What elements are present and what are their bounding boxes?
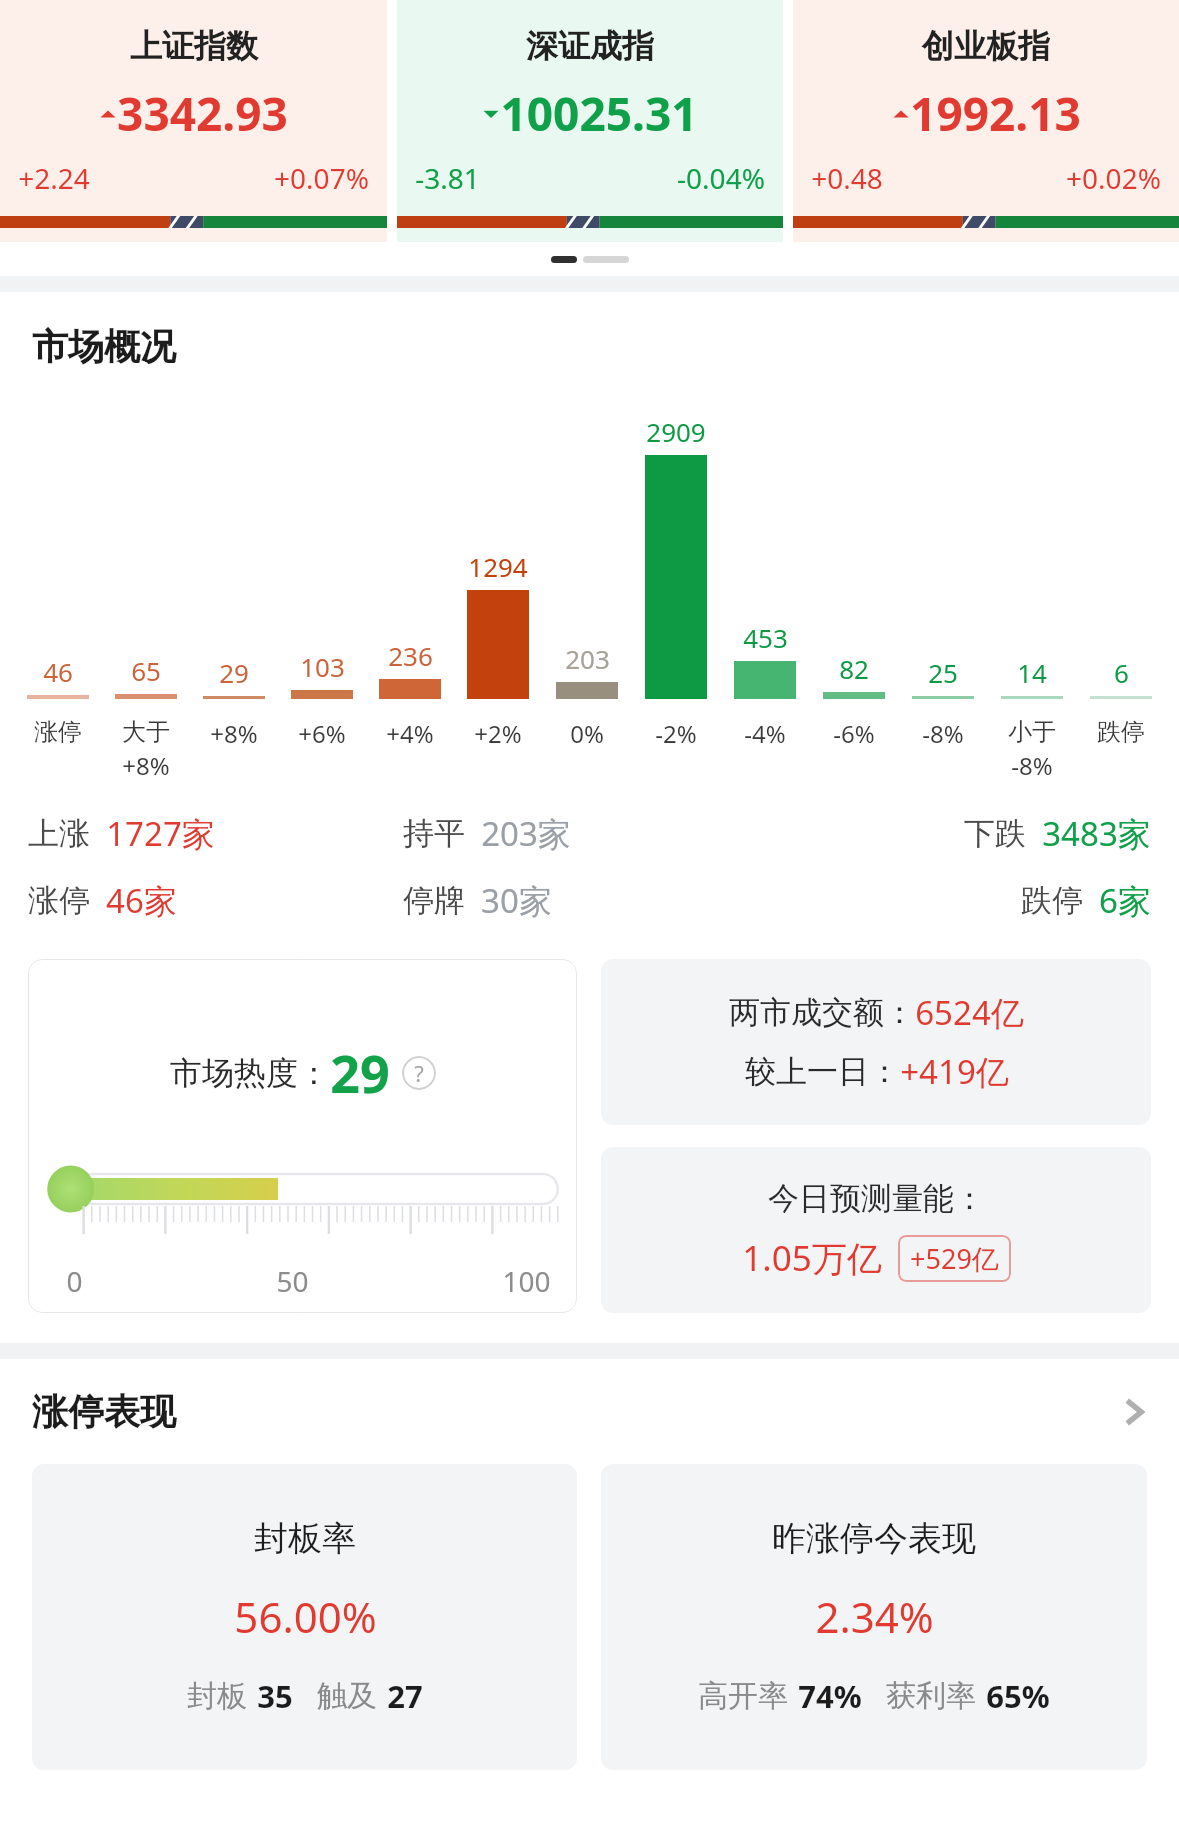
staticText: -4%: [744, 717, 786, 750]
staticText: 27: [387, 1675, 423, 1717]
staticText: 46家: [106, 878, 177, 923]
staticText: 50: [276, 1262, 309, 1300]
staticText: 深证成指: [526, 26, 654, 66]
staticText: +4%: [386, 717, 434, 750]
button[interactable]: 市场热度：: [28, 959, 577, 1313]
staticText: -6%: [833, 717, 875, 750]
staticText: 上证指数: [130, 26, 258, 66]
staticText: 两市成交额：: [729, 993, 915, 1032]
staticText: 封板: [187, 1677, 247, 1715]
staticText: -0.04%: [677, 159, 765, 197]
button[interactable]: 创业板指: [793, 0, 1179, 242]
button[interactable]: 29: [190, 409, 278, 783]
staticText: +8%: [210, 717, 258, 750]
button[interactable]: 236: [366, 409, 454, 783]
staticText: -8%: [1011, 749, 1053, 782]
staticText: 103: [300, 649, 345, 684]
button[interactable]: 昨涨停今表现: [601, 1464, 1147, 1770]
staticText: +2%: [474, 717, 522, 750]
staticText: 昨涨停今表现: [772, 1517, 976, 1560]
staticText: 持平: [403, 814, 465, 853]
staticText: 较上一日：: [745, 1052, 900, 1091]
button[interactable]: 2909: [631, 409, 720, 783]
staticText: 2.34%: [815, 1588, 934, 1645]
staticText: -3.81: [415, 159, 480, 197]
staticText: 6524亿: [915, 990, 1024, 1035]
staticText: 3342.93: [117, 82, 288, 145]
staticText: 上涨: [28, 814, 90, 853]
staticText: 30家: [481, 878, 552, 923]
staticText: 市场概况: [32, 324, 176, 369]
button[interactable]: 453: [720, 409, 809, 783]
button[interactable]: 今日预测量能：: [601, 1147, 1151, 1313]
staticText: 203: [565, 641, 610, 676]
button[interactable]: 6: [1076, 409, 1165, 783]
staticText: 停牌: [403, 881, 465, 920]
staticText: 1294: [468, 549, 528, 584]
staticText: -2%: [655, 717, 697, 750]
staticText: 下跌: [964, 814, 1026, 853]
button[interactable]: 25: [898, 409, 987, 783]
staticText: +2.24: [18, 159, 90, 197]
staticText: 65: [131, 653, 161, 688]
staticText: 跌停: [1097, 717, 1145, 747]
staticText: 1992.13: [910, 82, 1081, 145]
button[interactable]: 上证指数: [0, 0, 387, 242]
button[interactable]: 82: [809, 409, 898, 783]
button[interactable]: 14: [987, 409, 1076, 783]
staticText: 触及: [317, 1677, 377, 1715]
button[interactable]: 1294: [454, 409, 542, 783]
staticText: 0: [66, 1262, 83, 1300]
staticText: 14: [1017, 655, 1047, 690]
other: 查看更多: [1121, 1393, 1147, 1431]
staticText: +0.07%: [274, 159, 369, 197]
staticText: 236: [388, 638, 433, 673]
staticText: +8%: [122, 749, 170, 782]
staticText: 10025.31: [500, 82, 698, 145]
button[interactable]: 涨停表现: [32, 1389, 1147, 1434]
staticText: +419亿: [900, 1049, 1009, 1094]
staticText: 市场热度：: [170, 1053, 330, 1093]
staticText: 涨停: [34, 717, 82, 747]
button[interactable]: 65: [102, 409, 190, 783]
staticText: 1.05万亿: [742, 1234, 882, 1282]
staticText: 29: [219, 655, 249, 690]
button[interactable]: 封板率: [32, 1464, 577, 1770]
button[interactable]: 两市成交额：: [601, 959, 1151, 1125]
staticText: 获利率: [886, 1677, 976, 1715]
staticText: 6家: [1099, 878, 1151, 923]
button[interactable]: 103: [278, 409, 366, 783]
staticText: 跌停: [1021, 881, 1083, 920]
staticText: 29: [330, 1037, 390, 1108]
staticText: 453: [743, 620, 788, 655]
staticText: 46: [43, 654, 73, 689]
staticText: 3483家: [1042, 811, 1151, 856]
button[interactable]: 46: [14, 409, 102, 783]
staticText: 今日预测量能：: [768, 1179, 985, 1218]
staticText: 1727家: [106, 811, 215, 856]
staticText: +0.48: [811, 159, 883, 197]
staticText: 35: [257, 1675, 293, 1717]
staticText: +6%: [298, 717, 346, 750]
staticText: 小于: [1008, 717, 1056, 747]
staticText: 82: [839, 651, 869, 686]
button[interactable]: 说明: [402, 1056, 436, 1090]
staticText: -8%: [922, 717, 964, 750]
staticText: 100: [502, 1262, 551, 1300]
staticText: +0.02%: [1066, 159, 1161, 197]
staticText: +529亿: [910, 1240, 999, 1277]
button[interactable]: 深证成指: [397, 0, 783, 242]
staticText: 创业板指: [922, 26, 1050, 66]
button[interactable]: 203: [542, 409, 631, 783]
staticText: 封板率: [254, 1517, 356, 1560]
staticText: 高开率: [698, 1677, 788, 1715]
staticText: 涨停表现: [32, 1389, 176, 1434]
staticText: 涨停: [28, 881, 90, 920]
staticText: 56.00%: [234, 1588, 377, 1645]
staticText: 大于: [122, 717, 170, 747]
staticText: 6: [1114, 655, 1129, 690]
staticText: 25: [928, 655, 958, 690]
staticText: 2909: [646, 414, 706, 449]
staticText: 0%: [570, 717, 604, 750]
staticText: ?: [414, 1058, 424, 1088]
